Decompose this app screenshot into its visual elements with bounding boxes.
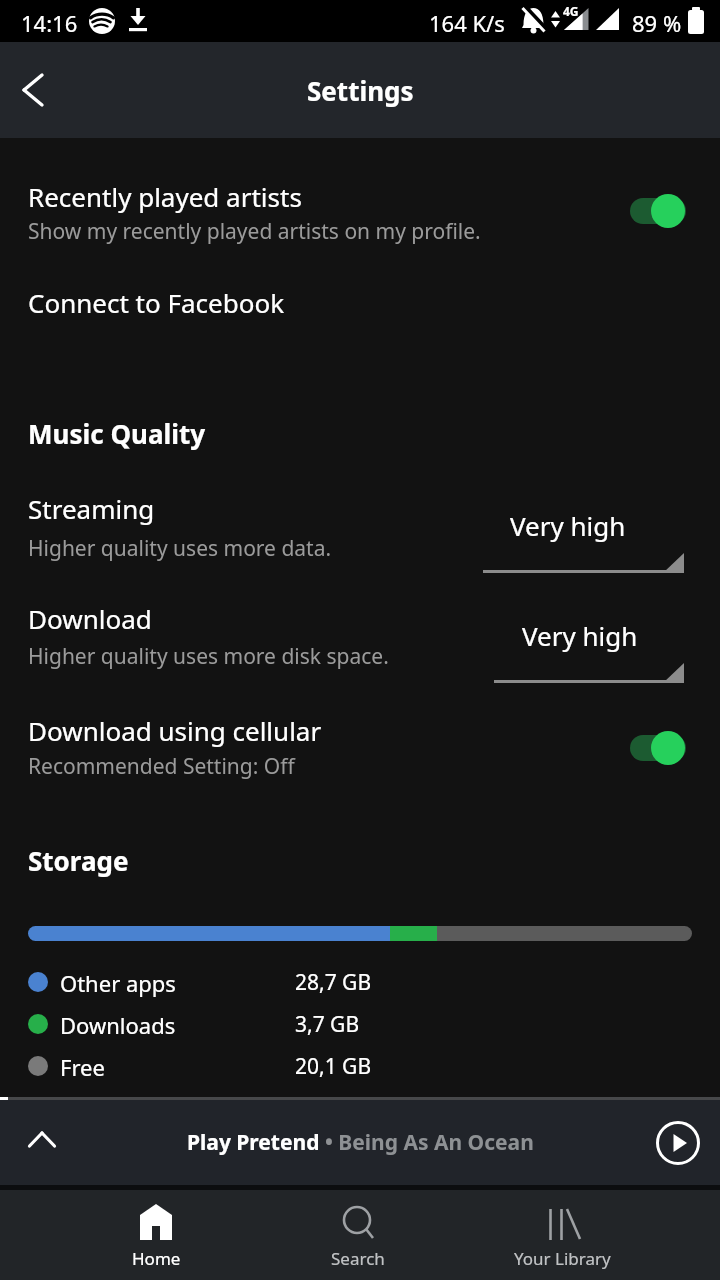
staticText: 4G [563, 3, 579, 19]
button[interactable]: Connect to Facebook [0, 278, 720, 333]
button[interactable]: Search [308, 1190, 408, 1280]
staticText: Higher quality uses more data. [28, 534, 332, 563]
button[interactable] [630, 735, 686, 761]
staticText: Music Quality [28, 416, 206, 451]
button[interactable] [494, 661, 684, 683]
button[interactable]: Your Library [502, 1190, 622, 1280]
staticText: Recommended Setting: Off [28, 752, 295, 781]
staticText: Very high [510, 508, 626, 543]
staticText: Other apps [60, 968, 176, 998]
staticText: 14:16 [21, 8, 78, 38]
staticText: Higher quality uses more disk space. [28, 642, 389, 671]
staticText: Streaming [28, 491, 155, 526]
staticText: Free [60, 1052, 105, 1082]
staticText: 28,7 GB [295, 968, 372, 997]
staticText: 89 % [632, 8, 682, 38]
button[interactable] [630, 198, 686, 224]
button[interactable]: Recently played artists [0, 170, 720, 260]
staticText: Recently played artists [28, 179, 302, 214]
staticText: Storage [28, 843, 129, 878]
staticText: 20,1 GB [295, 1052, 372, 1081]
staticText: Settings [307, 73, 414, 108]
staticText: Your Library [514, 1247, 611, 1270]
staticText: Download [28, 601, 152, 636]
button[interactable]: Home [106, 1190, 206, 1280]
button[interactable]: Play Pretend • Being As An Ocean [0, 1100, 720, 1185]
button[interactable] [22, 73, 44, 107]
staticText: Connect to Facebook [28, 285, 285, 320]
staticText: Downloads [60, 1010, 176, 1040]
button[interactable] [483, 551, 684, 573]
staticText: Very high [522, 618, 638, 653]
staticText: Play Pretend • Being As An Ocean [187, 1128, 534, 1157]
staticText: Search [331, 1247, 385, 1270]
staticText: Home [132, 1247, 181, 1270]
button[interactable] [656, 1121, 700, 1165]
staticText: Show my recently played artists on my pr… [28, 217, 481, 246]
button[interactable]: Download using cellular [0, 706, 720, 786]
staticText: 164 K/s [429, 8, 505, 38]
staticText: 3,7 GB [295, 1010, 360, 1039]
staticText: Download using cellular [28, 713, 322, 748]
